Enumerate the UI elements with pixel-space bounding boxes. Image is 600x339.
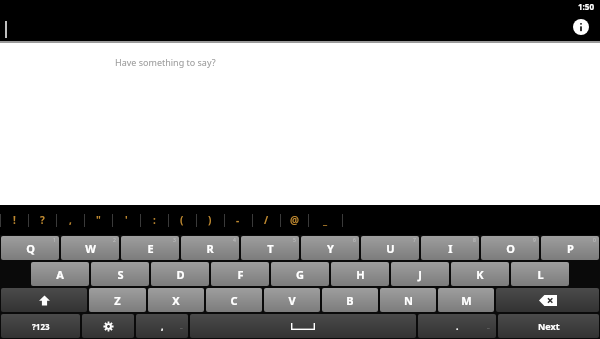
button[interactable]: P [541,236,599,260]
staticText: W [85,241,96,256]
button[interactable]: E [121,236,179,260]
button[interactable]: C [206,288,262,312]
button[interactable]: Next [498,314,599,338]
staticText: 1 [53,237,56,244]
button[interactable]: ' [112,205,140,235]
staticText: X [172,293,180,308]
staticText: D [176,267,185,282]
staticText: _ [180,322,183,330]
staticText: M [461,293,472,308]
staticText: 6 [353,237,356,244]
staticText: 9 [533,237,536,244]
staticText: 4 [233,237,236,244]
button[interactable]: M [438,288,494,312]
staticText: 8 [473,237,476,244]
button[interactable]: W [61,236,119,260]
button[interactable]: B [322,288,378,312]
staticText: R [206,241,214,256]
staticText: Q [26,241,35,256]
button[interactable]: V [264,288,320,312]
button[interactable]: J [391,262,449,286]
staticText: T [267,241,274,256]
staticText: - [236,213,240,227]
button[interactable]: X [148,288,204,312]
staticText: A [56,267,64,282]
button[interactable]: Backspace [496,288,599,312]
button[interactable]: . [418,314,496,338]
staticText: B [346,293,354,308]
button[interactable]: : [140,205,168,235]
staticText: I [448,241,453,256]
staticText: . [456,320,459,332]
button[interactable]: A [31,262,89,286]
button[interactable]: Space [190,314,416,338]
button[interactable]: N [380,288,436,312]
staticText: F [237,267,244,282]
button[interactable]: U [361,236,419,260]
staticText: ( [180,213,184,227]
button[interactable]: ? [28,205,56,235]
button[interactable]: T [241,236,299,260]
button[interactable]: L [511,262,569,286]
button[interactable]: K [451,262,509,286]
button[interactable]: ( [168,205,196,235]
button[interactable]: _ [308,205,342,235]
staticText: Z [114,293,121,308]
staticText: Next [538,320,560,332]
button[interactable]: Z [89,288,146,312]
staticText: V [288,293,296,308]
button[interactable]: ! [0,205,28,235]
staticText: K [476,267,484,282]
staticText: L [537,267,544,282]
button[interactable]: ) [196,205,224,235]
staticText: E [147,241,154,256]
button[interactable]: S [91,262,149,286]
button[interactable]: , [56,205,84,235]
button[interactable]: G [271,262,329,286]
button[interactable]: , [136,314,188,338]
staticText: Have something to say? [115,56,216,68]
button[interactable]: R [181,236,239,260]
button[interactable]: ?123 [1,314,80,338]
staticText: N [404,293,413,308]
staticText: S [117,267,124,282]
staticText: ? [40,213,45,227]
staticText: C [230,293,238,308]
staticText: ) [208,213,212,227]
staticText: : [153,213,156,227]
staticText: 7 [413,237,416,244]
staticText: H [356,267,365,282]
staticText: 2 [113,237,116,244]
button[interactable]: / [252,205,280,235]
staticText: / [264,213,269,227]
staticText: G [296,267,304,282]
staticText: ! [13,213,16,227]
button[interactable]: O [481,236,539,260]
button[interactable]: - [224,205,252,235]
staticText: 1:50 [578,1,594,12]
staticText: 3 [173,237,176,244]
staticText: J [418,267,422,282]
staticText: ' [125,213,128,227]
staticText: 5 [293,237,296,244]
button[interactable]: Q [1,236,59,260]
staticText: @ [290,213,299,227]
button[interactable]: @ [280,205,308,235]
button[interactable]: Shift [1,288,87,312]
button[interactable]: Settings [82,314,134,338]
staticText: _ [487,322,490,330]
staticText: , [69,213,72,227]
button[interactable]: D [151,262,209,286]
staticText: , [161,320,164,332]
button[interactable]: Info [570,16,592,38]
button[interactable]: " [84,205,112,235]
button[interactable]: I [421,236,479,260]
staticText: Y [327,241,334,256]
staticText: P [567,241,574,256]
staticText: U [386,241,395,256]
button[interactable]: Y [301,236,359,260]
staticText: 0 [593,237,596,244]
button[interactable]: F [211,262,269,286]
button[interactable]: H [331,262,389,286]
staticText: O [506,241,515,256]
